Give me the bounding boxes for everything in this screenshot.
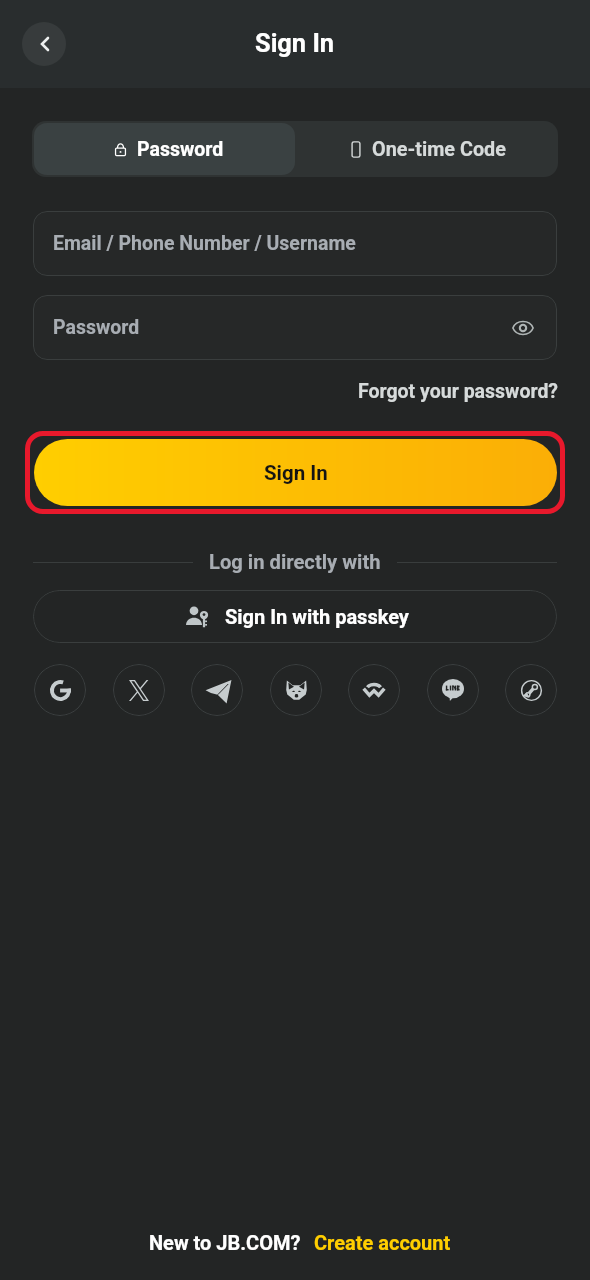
- staticText: Email / Phone Number / Username: [53, 232, 356, 255]
- staticText: One-time Code: [372, 138, 506, 161]
- button[interactable]: Sign in with WalletConnect: [348, 664, 400, 716]
- button[interactable]: Sign In with passkey: [33, 590, 557, 643]
- button[interactable]: Sign in with Google: [34, 664, 86, 716]
- staticText: Password: [137, 138, 224, 161]
- button[interactable]: Sign in with X: [113, 664, 165, 716]
- staticText: Sign In: [255, 28, 335, 58]
- button[interactable]: Sign In: [34, 439, 557, 506]
- staticText: Password: [53, 316, 140, 339]
- button[interactable]: Sign in with Steam: [505, 664, 557, 716]
- staticText: Forgot your password?: [358, 380, 559, 403]
- staticText: New to JB.COM?: [149, 1231, 301, 1254]
- button[interactable]: Show password: [508, 313, 538, 343]
- staticText: Sign In: [264, 461, 328, 485]
- staticText: Log in directly with: [209, 550, 381, 574]
- button[interactable]: One-time Code: [295, 123, 556, 175]
- button[interactable]: Password: [33, 295, 557, 360]
- button[interactable]: Sign in with LINE: [427, 664, 479, 716]
- staticText: Sign In with passkey: [225, 605, 409, 628]
- button[interactable]: Email / Phone Number / Username: [33, 211, 557, 276]
- button[interactable]: Password: [34, 123, 295, 175]
- button[interactable]: Forgot your password?: [358, 376, 559, 406]
- button[interactable]: Sign in with MetaMask: [270, 664, 322, 716]
- button[interactable]: Create account: [314, 1231, 451, 1254]
- button[interactable]: Back: [22, 22, 66, 66]
- button[interactable]: Sign in with Telegram: [191, 664, 243, 716]
